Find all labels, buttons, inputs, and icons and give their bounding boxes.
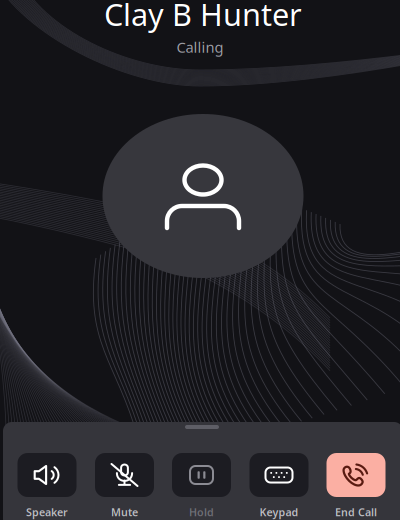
staticText: Hold xyxy=(189,505,214,519)
button[interactable]: End Call xyxy=(317,453,395,520)
staticText: Speaker xyxy=(26,505,68,519)
staticText: Clay B Hunter xyxy=(104,0,302,34)
button[interactable]: Hold xyxy=(162,453,240,520)
staticText: Calling xyxy=(176,37,223,57)
staticText: Mute xyxy=(111,505,138,519)
button[interactable]: Speaker xyxy=(8,453,86,520)
button[interactable]: Keypad xyxy=(240,453,318,520)
staticText: Keypad xyxy=(259,505,298,519)
staticText: End Call xyxy=(335,505,377,519)
button[interactable]: Mute xyxy=(85,453,163,520)
